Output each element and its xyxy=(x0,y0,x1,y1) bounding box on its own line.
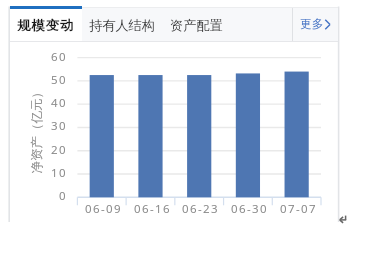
staticText: 0 xyxy=(59,188,67,204)
button[interactable]: 更多 xyxy=(293,8,338,41)
staticText: 持有人结构 xyxy=(89,17,155,34)
staticText: 06-23 xyxy=(182,201,220,215)
staticText: 07-07 xyxy=(280,201,318,215)
staticText: 资产配置 xyxy=(170,17,223,34)
staticText: 30 xyxy=(51,118,67,134)
staticText: 06-09 xyxy=(85,201,123,215)
staticText: 40 xyxy=(51,95,67,111)
staticText: 50 xyxy=(51,72,67,88)
staticText: 更多 xyxy=(300,17,324,32)
staticText: 10 xyxy=(51,165,67,181)
button[interactable]: 规模变动 xyxy=(10,9,82,41)
staticText: 06-30 xyxy=(231,201,269,215)
staticText: 规模变动 xyxy=(17,17,75,34)
staticText: 06-16 xyxy=(134,201,172,215)
staticText: 20 xyxy=(51,142,67,158)
button[interactable]: 资产配置 xyxy=(164,9,228,41)
staticText: 净资产（亿元） xyxy=(28,85,44,173)
button[interactable]: 持有人结构 xyxy=(84,9,160,41)
staticText: 60 xyxy=(51,49,67,65)
